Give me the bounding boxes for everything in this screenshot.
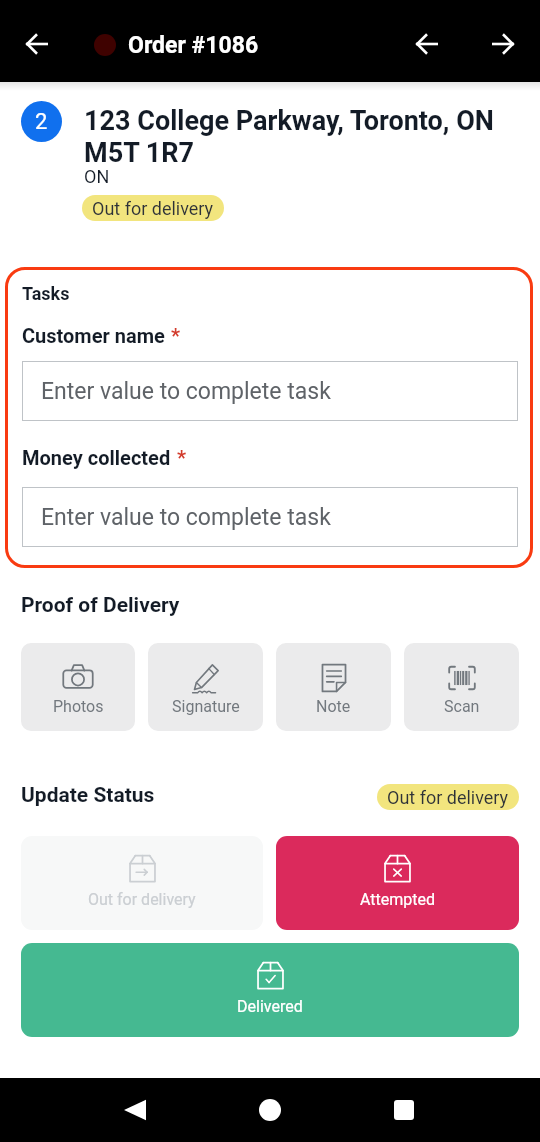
- staticText: Enter value to complete task: [41, 378, 331, 405]
- button[interactable]: Enter value to complete task: [22, 361, 518, 421]
- staticText: Attempted: [360, 890, 436, 909]
- staticText: Out for delivery: [387, 787, 509, 808]
- button[interactable]: Note: [276, 643, 391, 731]
- button[interactable]: Next order: [482, 23, 524, 65]
- button[interactable]: Home: [248, 1088, 292, 1132]
- staticText: Customer name: [22, 324, 165, 347]
- staticText: Order #1086: [128, 32, 259, 59]
- button[interactable]: Enter value to complete task: [22, 487, 518, 547]
- button[interactable]: Out for delivery: [377, 784, 519, 810]
- staticText: 123 College Parkway, Toronto, ON M5T 1R7: [84, 105, 504, 169]
- staticText: *: [177, 446, 187, 469]
- staticText: Scan: [444, 697, 480, 716]
- staticText: 2: [35, 109, 48, 135]
- staticText: Update Status: [21, 783, 155, 808]
- staticText: Proof of Delivery: [21, 593, 180, 618]
- button[interactable]: Scan: [404, 643, 519, 731]
- staticText: Out for delivery: [92, 198, 214, 219]
- button[interactable]: Attempted: [276, 836, 519, 930]
- staticText: Enter value to complete task: [41, 504, 331, 531]
- button[interactable]: Out for delivery: [21, 836, 263, 930]
- button[interactable]: Recent apps: [382, 1088, 426, 1132]
- staticText: Money collected: [22, 446, 171, 469]
- button[interactable]: Back: [113, 1088, 157, 1132]
- button[interactable]: Signature: [148, 643, 263, 731]
- staticText: Note: [316, 697, 351, 716]
- staticText: *: [171, 324, 181, 347]
- staticText: Tasks: [22, 283, 70, 304]
- button[interactable]: Out for delivery: [82, 195, 224, 221]
- staticText: ON: [84, 166, 110, 187]
- staticText: Delivered: [237, 997, 303, 1016]
- button[interactable]: Delivered: [21, 943, 519, 1037]
- button[interactable]: Photos: [21, 643, 135, 731]
- staticText: Signature: [172, 697, 240, 716]
- button[interactable]: Back: [16, 23, 58, 65]
- staticText: Out for delivery: [88, 890, 196, 909]
- staticText: Photos: [53, 697, 104, 716]
- button[interactable]: Previous order: [406, 23, 448, 65]
